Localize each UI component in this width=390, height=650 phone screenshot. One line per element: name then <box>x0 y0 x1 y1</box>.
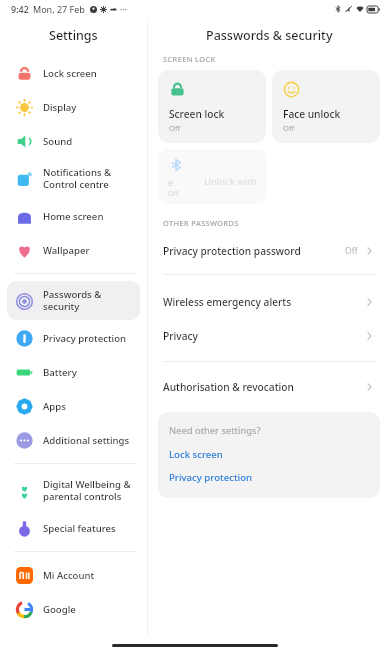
button[interactable]: Passwords & security <box>7 281 140 320</box>
button[interactable]: Notifications & Control centre <box>7 159 140 198</box>
staticText: Digital Wellbeing & parental controls <box>43 478 131 503</box>
button[interactable]: Wallpaper <box>7 234 140 266</box>
staticText: Google <box>43 603 76 616</box>
staticText: Authorisation & revocation <box>163 380 363 394</box>
staticText: Face unlock <box>283 107 341 121</box>
staticText: Privacy protection <box>169 471 253 484</box>
button[interactable]: Google <box>7 593 140 625</box>
staticText: Passwords & security <box>43 288 134 313</box>
button[interactable]: e <box>158 149 267 204</box>
staticText: Privacy <box>163 329 363 343</box>
staticText: Off <box>168 188 179 198</box>
button[interactable]: Privacy protection password <box>153 234 385 268</box>
staticText: Apps <box>43 400 66 413</box>
staticText: Mon, 27 Feb <box>33 3 85 15</box>
button[interactable]: Screen lock <box>158 70 266 143</box>
staticText: Wireless emergency alerts <box>163 295 363 309</box>
staticText: Special features <box>43 522 116 535</box>
staticText: Screen lock <box>169 107 225 121</box>
button[interactable]: Authorisation & revocation <box>153 370 385 404</box>
button[interactable]: Battery <box>7 356 140 388</box>
staticText: Privacy protection <box>43 332 127 345</box>
button[interactable]: Face unlock <box>272 70 380 143</box>
button[interactable]: Lock screen <box>7 57 140 89</box>
button[interactable]: Home screen <box>7 200 140 232</box>
staticText: Mi Account <box>43 569 95 582</box>
button[interactable]: Display <box>7 91 140 123</box>
button[interactable]: Apps <box>7 390 140 422</box>
button[interactable]: Mi Account <box>7 559 140 591</box>
button[interactable]: Lock screen <box>169 448 223 461</box>
button[interactable]: Special features <box>7 512 140 544</box>
staticText: Display <box>43 101 77 114</box>
staticText: Off <box>283 123 295 133</box>
staticText: ··· <box>120 3 128 15</box>
staticText: Lock screen <box>43 67 97 80</box>
button[interactable]: Digital Wellbeing & parental controls <box>7 471 140 510</box>
staticText: Need other settings? <box>169 424 261 437</box>
staticText: SCREEN LOCK <box>163 54 216 64</box>
button[interactable]: Privacy <box>153 319 385 353</box>
staticText: Wallpaper <box>43 244 90 257</box>
staticText: Sound <box>43 135 73 148</box>
button[interactable]: Privacy protection <box>169 471 253 484</box>
staticText: Off <box>169 123 181 133</box>
staticText: Privacy protection password <box>163 244 345 258</box>
staticText: Notifications & Control centre <box>43 166 112 191</box>
button[interactable]: Wireless emergency alerts <box>153 285 385 319</box>
staticText: Home screen <box>43 210 104 223</box>
staticText: OTHER PASSWORDS <box>163 218 239 228</box>
button[interactable]: Privacy protection <box>7 322 140 354</box>
staticText: Lock screen <box>169 448 223 461</box>
staticText: Unlock with <box>204 175 260 188</box>
button[interactable]: Additional settings <box>7 424 140 456</box>
staticText: Additional settings <box>43 434 130 447</box>
staticText: Battery <box>43 366 77 379</box>
staticText: 9:42 <box>11 3 29 15</box>
button[interactable]: Sound <box>7 125 140 157</box>
staticText: Passwords & security <box>206 27 333 44</box>
staticText: e <box>168 176 174 188</box>
staticText: Settings <box>49 27 98 44</box>
staticText: Off <box>345 245 358 257</box>
